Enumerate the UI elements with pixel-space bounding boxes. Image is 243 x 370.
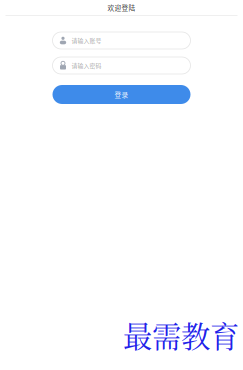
staticText: 最需教育 xyxy=(123,314,239,356)
staticText: 请输入账号 xyxy=(71,36,101,45)
button[interactable]: 请输入账号 xyxy=(52,32,190,49)
button[interactable]: 登录 xyxy=(52,85,190,104)
staticText: 欢迎登陆 xyxy=(107,3,135,12)
button[interactable]: 请输入密码 xyxy=(52,57,190,74)
staticText: 请输入密码 xyxy=(71,61,101,70)
staticText: 登录 xyxy=(114,90,128,99)
